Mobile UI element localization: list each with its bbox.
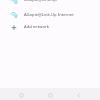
button[interactable]: BGopie@Link-Up: [0, 0, 100, 6]
staticText: AGopie@Link-Up Internet: [24, 12, 74, 18]
button[interactable]: AGopie@Link-Up Internet: [0, 9, 100, 21]
staticText: BGopie@Link-Up: [24, 0, 57, 3]
staticText: Add network: [24, 24, 49, 30]
button[interactable]: Add network: [0, 21, 100, 33]
button[interactable]: Back: [71, 88, 85, 100]
button[interactable]: Home: [43, 88, 57, 100]
button[interactable]: Recent apps: [14, 88, 28, 100]
